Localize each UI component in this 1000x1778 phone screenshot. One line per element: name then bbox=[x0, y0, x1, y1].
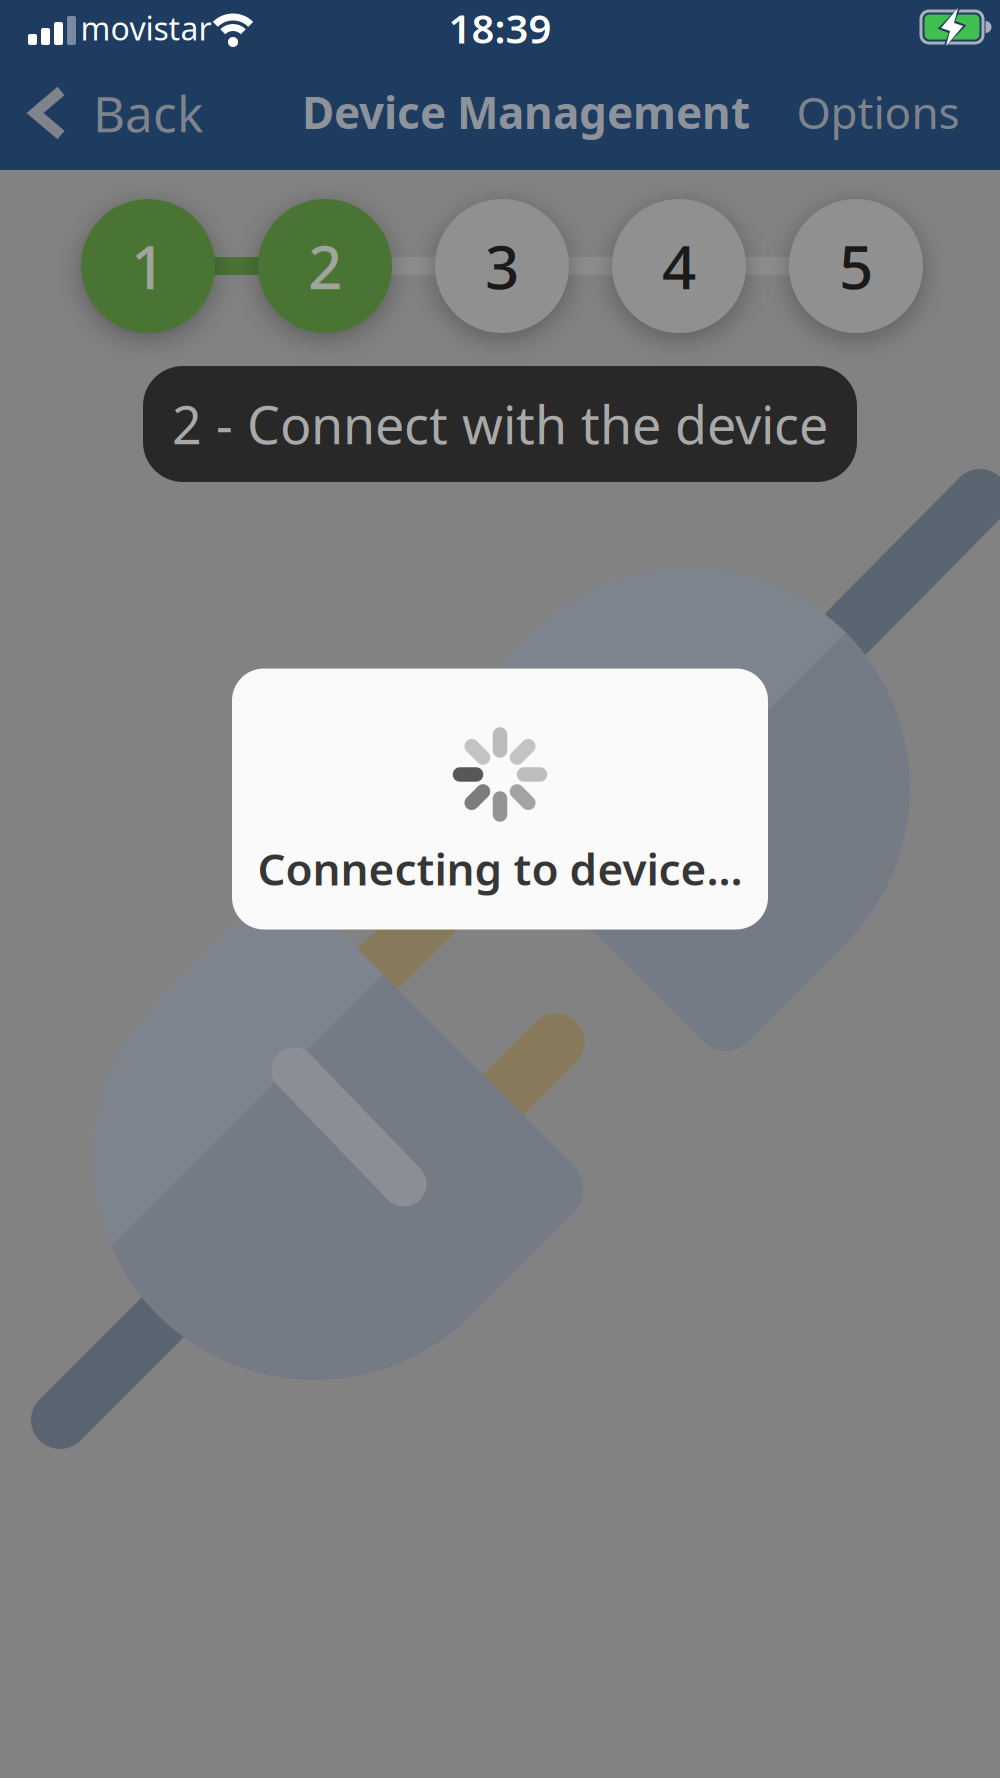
staticText: 18:39 bbox=[448, 1, 551, 54]
staticText: 2 bbox=[308, 226, 342, 306]
staticText: 1 bbox=[131, 226, 165, 306]
staticText: 5 bbox=[839, 226, 873, 306]
staticText: Back bbox=[93, 80, 203, 146]
staticText: 2 - Connect with the device bbox=[172, 389, 828, 459]
button[interactable]: Options bbox=[796, 83, 959, 141]
staticText: 3 bbox=[485, 226, 519, 306]
staticText: Connecting to device... bbox=[257, 839, 742, 898]
staticText: Device Management bbox=[302, 83, 750, 141]
staticText: 4 bbox=[662, 226, 696, 306]
staticText: movistar bbox=[80, 7, 211, 49]
button[interactable]: Back bbox=[25, 80, 203, 146]
staticText: Options bbox=[796, 83, 959, 141]
